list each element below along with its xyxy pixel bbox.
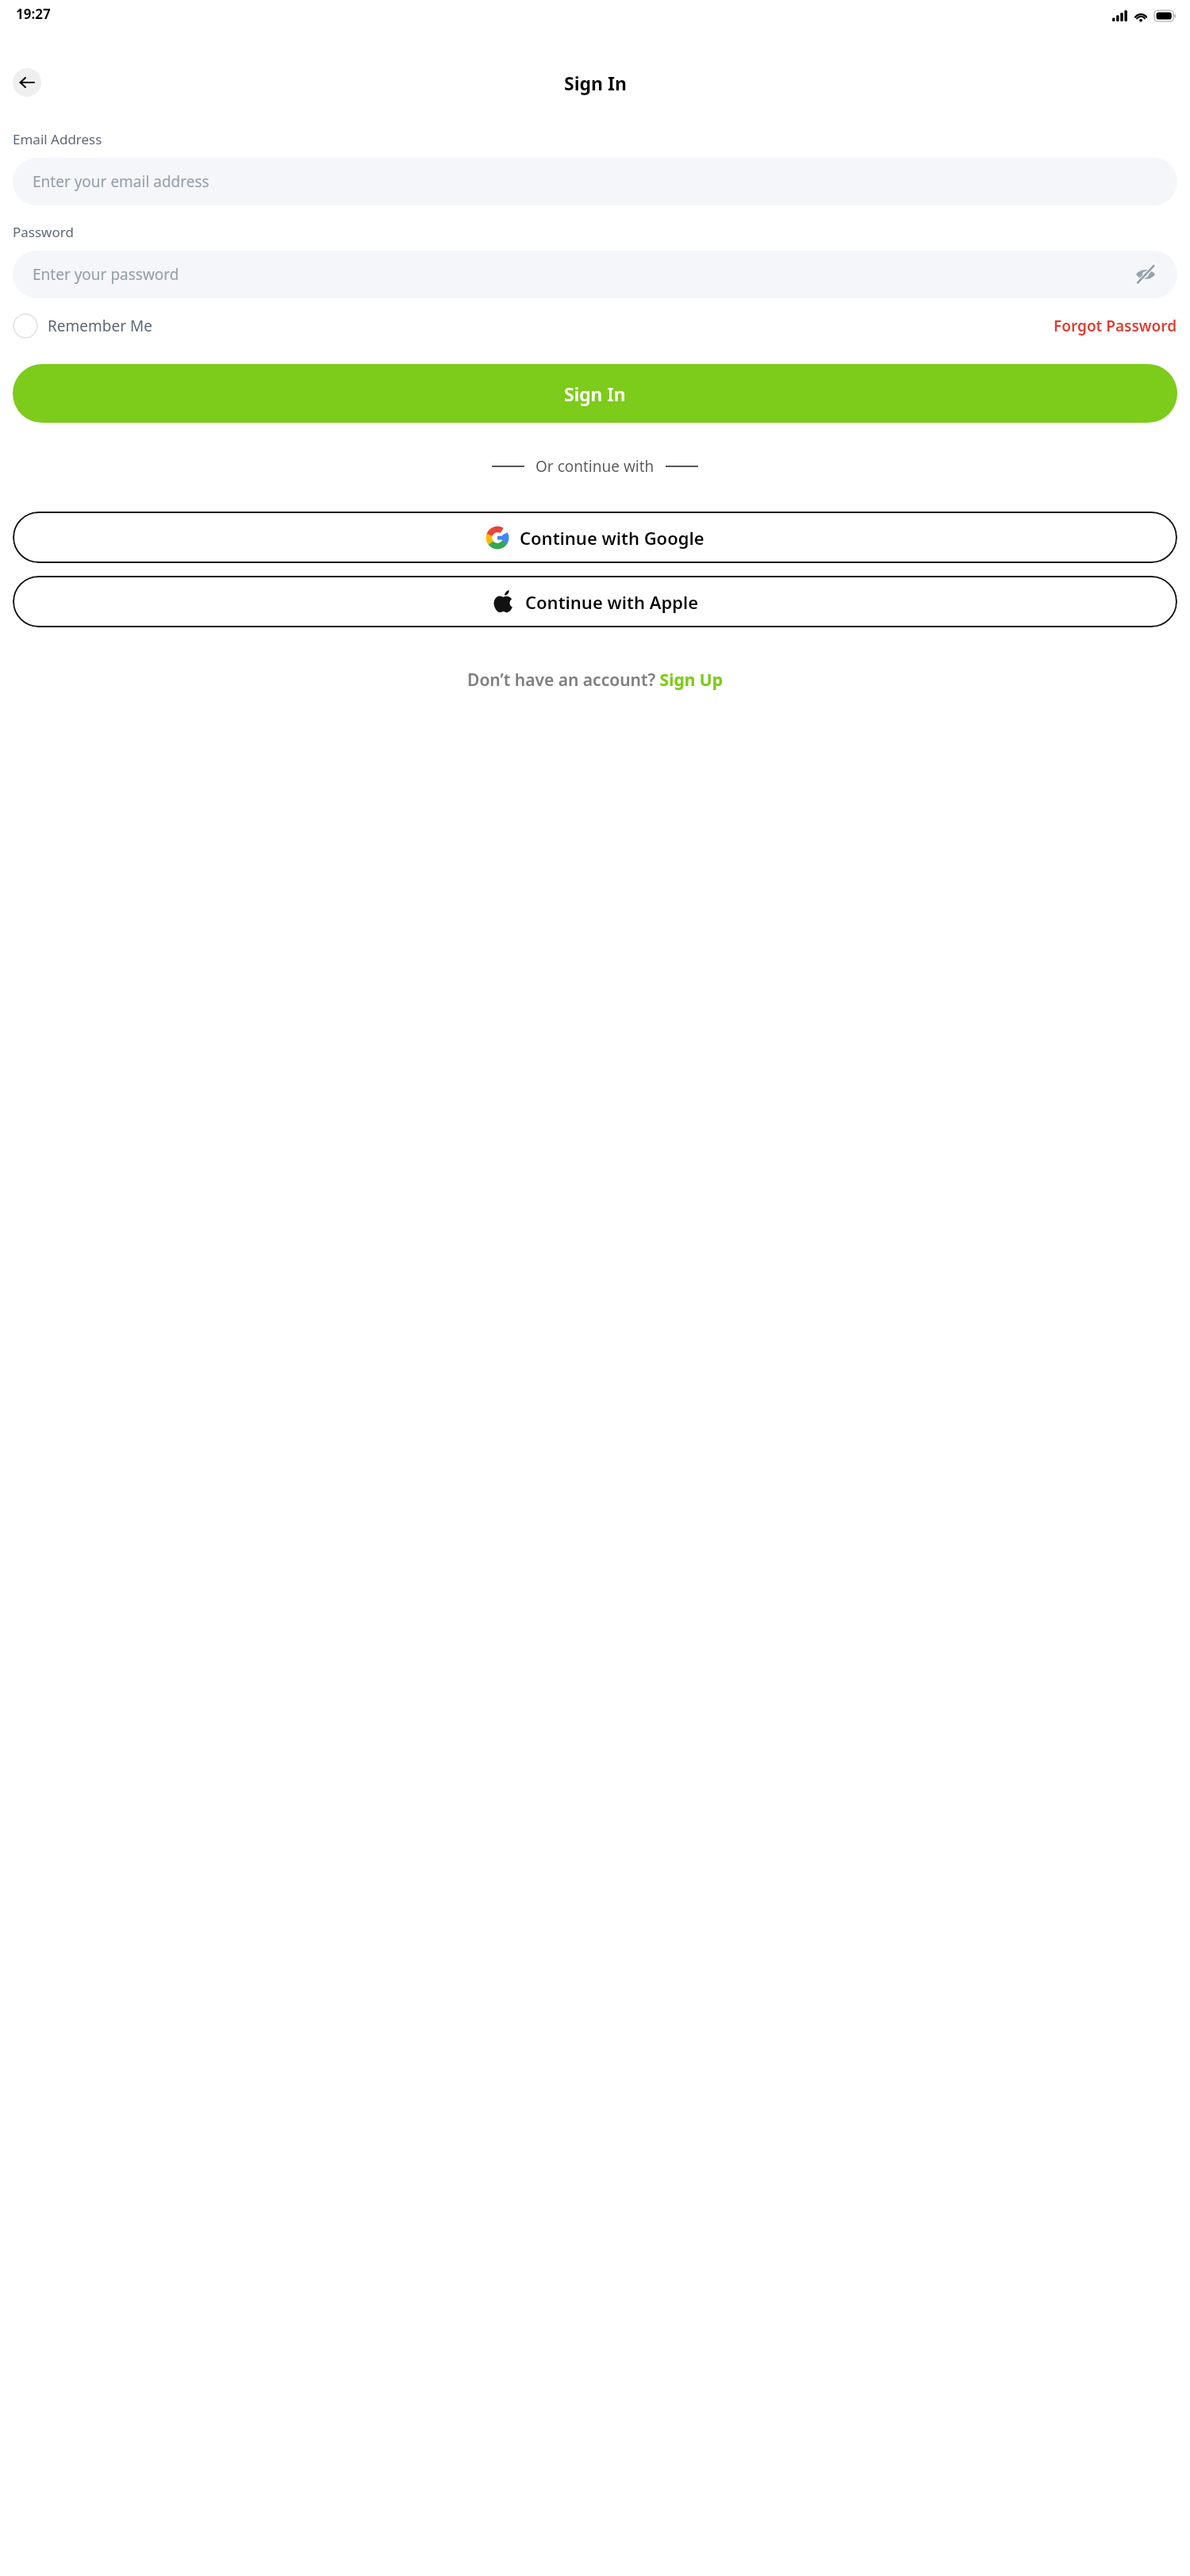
button[interactable]: Back — [13, 68, 41, 97]
button[interactable]: Sign In — [13, 364, 1177, 423]
button[interactable]: Enter your email address — [13, 158, 1177, 205]
staticText: Forgot Password — [1054, 316, 1177, 336]
button[interactable]: Continue with Apple — [13, 576, 1177, 627]
staticText: Enter your password — [33, 264, 179, 285]
staticText: Enter your email address — [33, 171, 209, 192]
button[interactable]: Forgot Password — [1054, 316, 1177, 336]
staticText: Don’t have an account? Sign Up — [467, 669, 723, 692]
button[interactable]: Continue with Google — [13, 512, 1177, 563]
staticText: Remember Me — [48, 316, 152, 336]
staticText: Password — [13, 223, 74, 241]
button[interactable]: Enter your password — [13, 251, 1177, 298]
staticText: Or continue with — [535, 456, 654, 477]
button[interactable]: Don’t have an account? Sign Up — [13, 669, 1177, 692]
staticText: Sign In — [564, 381, 626, 406]
staticText: Continue with Apple — [525, 590, 699, 614]
staticText: Continue with Google — [520, 526, 704, 550]
staticText: 19:27 — [16, 5, 51, 23]
staticText: Email Address — [13, 130, 102, 148]
button[interactable]: Remember Me — [13, 313, 152, 339]
staticText: Sign In — [564, 71, 627, 95]
button[interactable]: Show password — [1134, 263, 1157, 286]
